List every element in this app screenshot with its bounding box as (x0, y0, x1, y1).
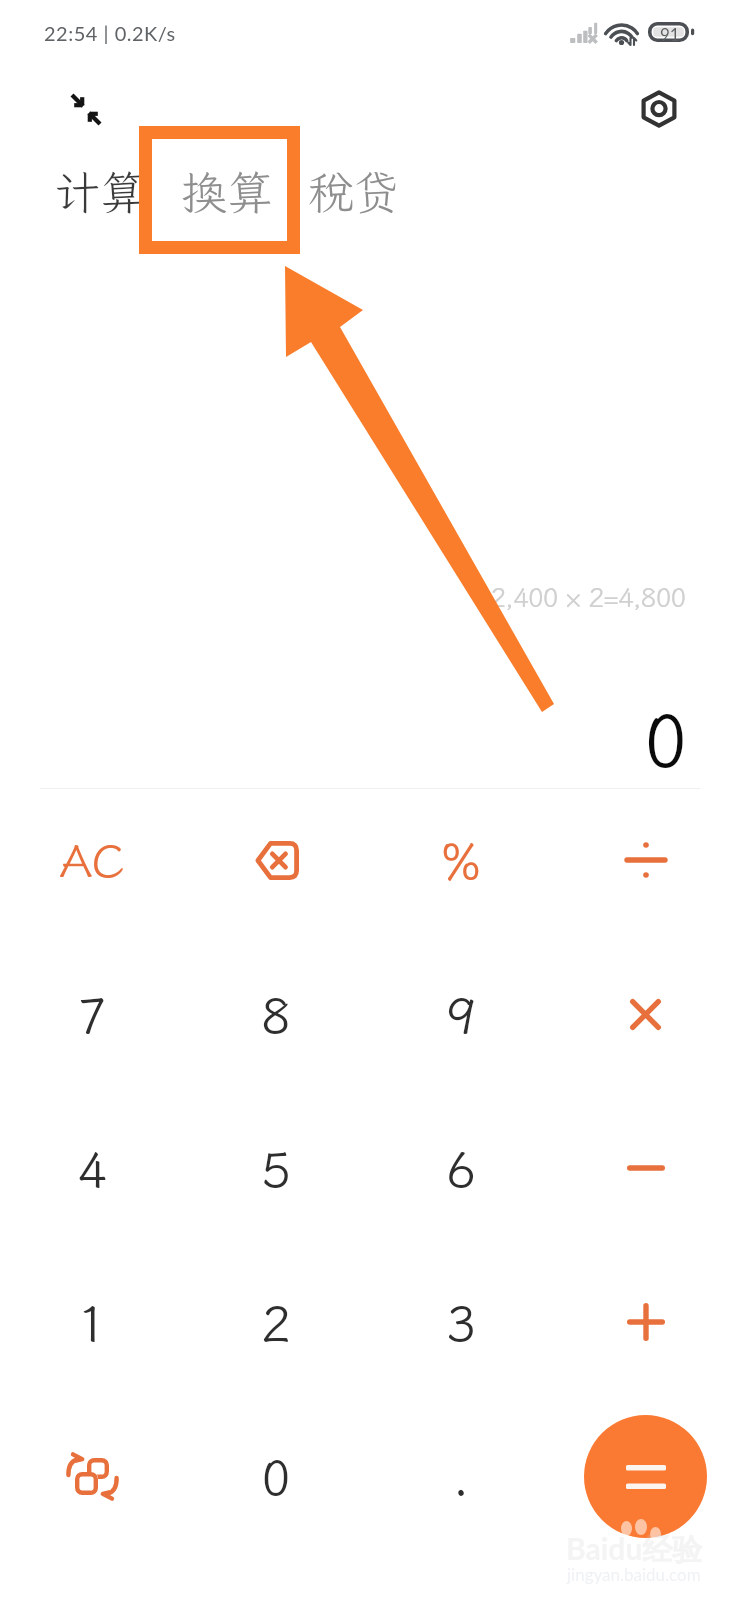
staticText: 换算 (181, 162, 273, 223)
button[interactable]: 税贷 (304, 154, 404, 231)
staticText: 8 (261, 981, 291, 1047)
staticText: . (452, 1443, 470, 1509)
staticText: 0 (261, 1443, 291, 1509)
button[interactable]: 5 (184, 1091, 368, 1245)
staticText: 9 (446, 981, 476, 1047)
button[interactable]: 换算 (177, 154, 277, 231)
button[interactable]: Minus (553, 1091, 738, 1245)
button[interactable]: 0 (184, 1399, 368, 1553)
button[interactable]: 2 (184, 1245, 368, 1399)
staticText: 6 (446, 1135, 476, 1201)
staticText: 22:54 | 0.2K/s (44, 21, 176, 45)
button[interactable]: 3 (368, 1245, 553, 1399)
staticText: 4 (77, 1135, 107, 1201)
button[interactable]: 8 (184, 937, 368, 1091)
staticText: 0 (0, 691, 688, 788)
staticText: % (441, 827, 481, 893)
staticText: 计算 (54, 162, 146, 223)
staticText: jingyan.baidu.com (567, 1564, 701, 1584)
button[interactable]: 1 (0, 1245, 184, 1399)
staticText: 1 (77, 1289, 107, 1355)
button[interactable]: % (368, 783, 553, 937)
button[interactable]: 6 (368, 1091, 553, 1245)
button[interactable]: 7 (0, 937, 184, 1091)
staticText: Baidu经验 (566, 1530, 703, 1569)
button[interactable]: . (368, 1399, 553, 1553)
staticText: 2,400 × 2=4,800 (0, 579, 685, 615)
button[interactable]: Equals (584, 1415, 707, 1538)
staticText: AC (60, 830, 125, 891)
button[interactable]: AC (0, 783, 184, 937)
staticText: 税贷 (308, 162, 400, 223)
button[interactable]: Backspace (184, 783, 368, 937)
staticText: 5 (261, 1135, 291, 1201)
button[interactable]: 4 (0, 1091, 184, 1245)
button[interactable]: Convert (0, 1399, 184, 1553)
button[interactable]: Divide (553, 783, 738, 937)
button[interactable]: Settings (623, 73, 695, 145)
staticText: 2 (261, 1289, 291, 1355)
button[interactable]: Collapse (50, 73, 122, 145)
staticText: 3 (446, 1289, 476, 1355)
staticText: 91 (660, 24, 680, 44)
button[interactable]: Plus (553, 1245, 738, 1399)
button[interactable]: 9 (368, 937, 553, 1091)
staticText: 7 (77, 981, 107, 1047)
button[interactable]: 计算 (50, 154, 150, 231)
button[interactable]: Multiply (553, 937, 738, 1091)
